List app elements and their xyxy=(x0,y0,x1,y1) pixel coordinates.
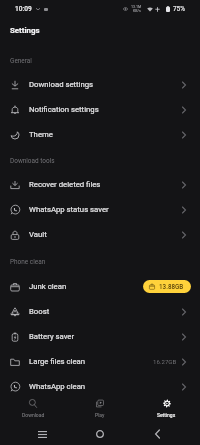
button[interactable]: Settings xyxy=(133,394,200,422)
staticText: KB/s xyxy=(133,9,141,13)
staticText: Boost xyxy=(29,307,50,316)
button[interactable]: Battery saver xyxy=(0,324,200,349)
button[interactable]: Recover deleted files xyxy=(0,172,200,197)
button[interactable]: Play xyxy=(66,394,133,422)
staticText: Recover deleted files xyxy=(29,180,101,189)
staticText: Junk clean xyxy=(29,282,67,291)
staticText: Download tools xyxy=(10,157,55,165)
button[interactable]: Large files clean xyxy=(0,349,200,374)
button[interactable]: Theme xyxy=(0,122,200,147)
staticText: Large files clean xyxy=(29,357,86,366)
staticText: Battery saver xyxy=(29,332,75,341)
staticText: 13.88GB xyxy=(159,283,184,290)
button[interactable]: Recent apps xyxy=(31,423,53,445)
button[interactable]: 13.88GB xyxy=(143,280,191,293)
button[interactable]: Download settings xyxy=(0,72,200,97)
button[interactable]: Back xyxy=(146,423,168,445)
staticText: 16.27GB xyxy=(153,358,177,365)
staticText: Download settings xyxy=(29,80,94,89)
button[interactable]: Boost xyxy=(0,299,200,324)
staticText: General xyxy=(10,57,32,65)
staticText: Play xyxy=(95,412,105,418)
staticText: 75% xyxy=(173,5,185,13)
button[interactable]: Vault xyxy=(0,222,200,247)
staticText: Settings xyxy=(10,26,40,35)
staticText: 13.1M xyxy=(131,5,142,9)
staticText: Vault xyxy=(29,230,47,239)
staticText: Download xyxy=(22,412,45,418)
staticText: WhatsApp clean xyxy=(29,382,86,391)
staticText: Notification settings xyxy=(29,105,99,114)
staticText: Theme xyxy=(29,130,53,139)
button[interactable]: Notification settings xyxy=(0,97,200,122)
button[interactable]: WhatsApp clean xyxy=(0,374,200,399)
staticText: Settings xyxy=(157,412,176,418)
button[interactable]: Home xyxy=(89,423,111,445)
staticText: WhatsApp status saver xyxy=(29,205,109,214)
staticText: Phone clean xyxy=(10,258,46,266)
staticText: 10:09 xyxy=(15,5,32,13)
button[interactable]: WhatsApp status saver xyxy=(0,197,200,222)
button[interactable]: Download xyxy=(0,394,66,422)
button[interactable]: Junk clean xyxy=(0,274,200,299)
